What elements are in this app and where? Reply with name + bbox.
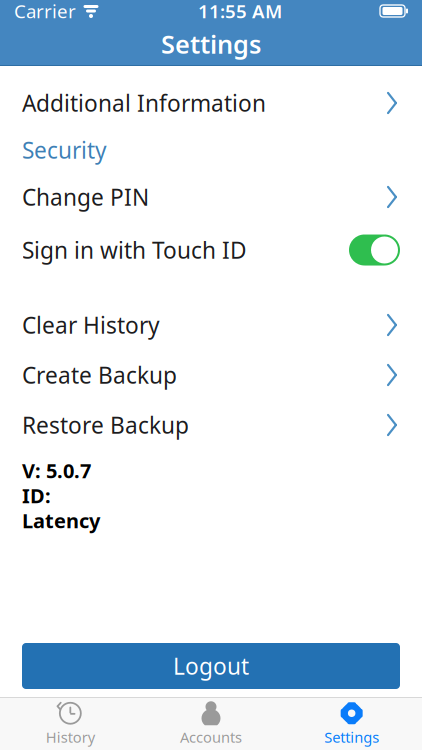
button[interactable]: Settings [281, 698, 422, 750]
staticText: Change PIN [22, 182, 149, 212]
button[interactable]: Change PIN [0, 172, 422, 222]
button[interactable]: Logout [22, 643, 400, 689]
staticText: Latency [22, 507, 100, 534]
button[interactable]: History [0, 698, 141, 750]
button[interactable]: Sign in with Touch ID [349, 234, 400, 265]
button[interactable]: Create Backup [0, 350, 422, 400]
staticText: Carrier [14, 0, 76, 23]
staticText: V: 5.0.7 [22, 457, 91, 484]
staticText: Create Backup [22, 360, 177, 390]
staticText: Settings [161, 27, 261, 61]
button[interactable]: Additional Information [0, 78, 422, 128]
staticText: Clear History [22, 310, 160, 340]
staticText: 11:55 AM [198, 0, 282, 23]
staticText: ID: [22, 482, 51, 509]
button[interactable]: Restore Backup [0, 400, 422, 450]
staticText: History [46, 727, 95, 747]
staticText: Settings [324, 727, 379, 747]
staticText: Sign in with Touch ID [22, 235, 247, 265]
staticText: Additional Information [22, 88, 266, 118]
button[interactable]: Clear History [0, 300, 422, 350]
staticText: Security [22, 135, 107, 165]
button[interactable]: Sign in with Touch ID [0, 222, 422, 278]
staticText: Accounts [180, 727, 242, 747]
staticText: Restore Backup [22, 410, 189, 440]
staticText: Logout [173, 651, 249, 681]
button[interactable]: Accounts [141, 698, 281, 750]
